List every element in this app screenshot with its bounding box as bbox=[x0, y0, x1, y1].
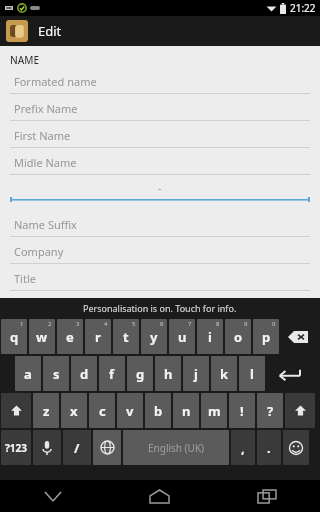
staticText: f bbox=[109, 365, 115, 383]
staticText: o bbox=[234, 328, 243, 346]
button[interactable]: z bbox=[33, 393, 59, 428]
button[interactable]: o bbox=[225, 319, 251, 354]
button[interactable]: Personalisation is on. Touch for info. bbox=[0, 298, 320, 318]
button[interactable]: Emoji bbox=[283, 430, 309, 465]
button[interactable]: First Name bbox=[0, 123, 320, 150]
button[interactable]: Language bbox=[93, 430, 121, 465]
button[interactable]: n bbox=[173, 393, 199, 428]
button[interactable]: Name Suffix bbox=[0, 212, 320, 239]
button[interactable]: d bbox=[71, 356, 97, 391]
button[interactable]: e bbox=[57, 319, 83, 354]
button[interactable]: x bbox=[61, 393, 87, 428]
staticText: k bbox=[220, 365, 229, 383]
button[interactable]: k bbox=[211, 356, 237, 391]
button[interactable]: , bbox=[231, 430, 255, 465]
button[interactable]: i bbox=[197, 319, 223, 354]
staticText: h bbox=[164, 365, 173, 383]
staticText: English (UK) bbox=[148, 441, 205, 455]
button[interactable]: q bbox=[1, 319, 27, 354]
staticText: / bbox=[74, 439, 80, 457]
button[interactable]: Voice input bbox=[33, 430, 61, 465]
button[interactable]: h bbox=[155, 356, 181, 391]
staticText: w bbox=[36, 328, 48, 346]
staticText: 8 bbox=[216, 320, 220, 328]
button[interactable]: - bbox=[0, 177, 320, 209]
staticText: ! bbox=[240, 402, 244, 420]
staticText: Formated name bbox=[14, 74, 97, 89]
button[interactable]: f bbox=[99, 356, 125, 391]
button[interactable]: Company bbox=[0, 239, 320, 266]
staticText: Midle Name bbox=[14, 155, 77, 170]
button[interactable]: ! bbox=[229, 393, 255, 428]
staticText: e bbox=[66, 328, 74, 346]
button[interactable]: y bbox=[141, 319, 167, 354]
button[interactable]: Enter bbox=[267, 356, 311, 391]
button[interactable]: / bbox=[63, 430, 91, 465]
staticText: 9 bbox=[244, 320, 248, 328]
staticText: 21:22 bbox=[290, 1, 316, 15]
staticText: q bbox=[10, 328, 19, 346]
button[interactable]: ? bbox=[257, 393, 283, 428]
button[interactable]: b bbox=[145, 393, 171, 428]
button[interactable]: g bbox=[127, 356, 153, 391]
staticText: 0 bbox=[272, 320, 276, 328]
button[interactable]: c bbox=[89, 393, 115, 428]
button[interactable]: r bbox=[85, 319, 111, 354]
staticText: Name Suffix bbox=[14, 217, 77, 232]
staticText: 2 bbox=[48, 320, 52, 328]
staticText: x bbox=[70, 402, 78, 420]
staticText: 7 bbox=[188, 320, 192, 328]
staticText: Prefix Name bbox=[14, 101, 78, 116]
staticText: Title bbox=[14, 271, 36, 286]
staticText: , bbox=[241, 439, 245, 457]
staticText: Edit bbox=[38, 22, 62, 40]
staticText: c bbox=[99, 402, 106, 420]
button[interactable]: s bbox=[43, 356, 69, 391]
button[interactable]: Shift bbox=[1, 393, 31, 428]
button[interactable]: v bbox=[117, 393, 143, 428]
button[interactable]: m bbox=[201, 393, 227, 428]
staticText: l bbox=[250, 365, 254, 383]
staticText: g bbox=[136, 365, 145, 383]
staticText: ?123 bbox=[5, 441, 27, 455]
button[interactable]: l bbox=[239, 356, 265, 391]
staticText: i bbox=[208, 328, 212, 346]
button[interactable]: Delete bbox=[281, 319, 314, 354]
button[interactable]: Prefix Name bbox=[0, 96, 320, 123]
button[interactable]: a bbox=[15, 356, 41, 391]
staticText: r bbox=[95, 328, 101, 346]
button[interactable]: Midle Name bbox=[0, 150, 320, 177]
staticText: NAME bbox=[10, 53, 40, 67]
staticText: 3 bbox=[76, 320, 80, 328]
staticText: t bbox=[123, 328, 129, 346]
staticText: a bbox=[24, 365, 32, 383]
staticText: m bbox=[208, 402, 221, 420]
button[interactable]: Hide keyboard bbox=[0, 480, 106, 512]
staticText: s bbox=[53, 365, 60, 383]
staticText: Company bbox=[14, 244, 64, 259]
staticText: 5 bbox=[132, 320, 136, 328]
staticText: b bbox=[154, 402, 163, 420]
button[interactable]: j bbox=[183, 356, 209, 391]
staticText: 6 bbox=[160, 320, 164, 328]
staticText: . bbox=[267, 439, 271, 457]
button[interactable]: t bbox=[113, 319, 139, 354]
button[interactable]: Recent apps bbox=[213, 480, 320, 512]
staticText: First Name bbox=[14, 128, 71, 143]
button[interactable]: ?123 bbox=[1, 430, 31, 465]
staticText: - bbox=[158, 181, 162, 195]
staticText: 4 bbox=[104, 320, 108, 328]
staticText: v bbox=[126, 402, 134, 420]
button[interactable]: u bbox=[169, 319, 195, 354]
button[interactable]: App icon bbox=[6, 20, 28, 42]
button[interactable]: English (UK) bbox=[123, 430, 229, 465]
button[interactable]: Formated name bbox=[0, 69, 320, 96]
staticText: 1 bbox=[20, 320, 24, 328]
staticText: Personalisation is on. Touch for info. bbox=[83, 302, 237, 314]
button[interactable]: Shift bbox=[285, 393, 315, 428]
button[interactable]: Home bbox=[106, 480, 213, 512]
button[interactable]: Title bbox=[0, 266, 320, 293]
button[interactable]: p bbox=[253, 319, 279, 354]
button[interactable]: . bbox=[257, 430, 281, 465]
button[interactable]: w bbox=[29, 319, 55, 354]
